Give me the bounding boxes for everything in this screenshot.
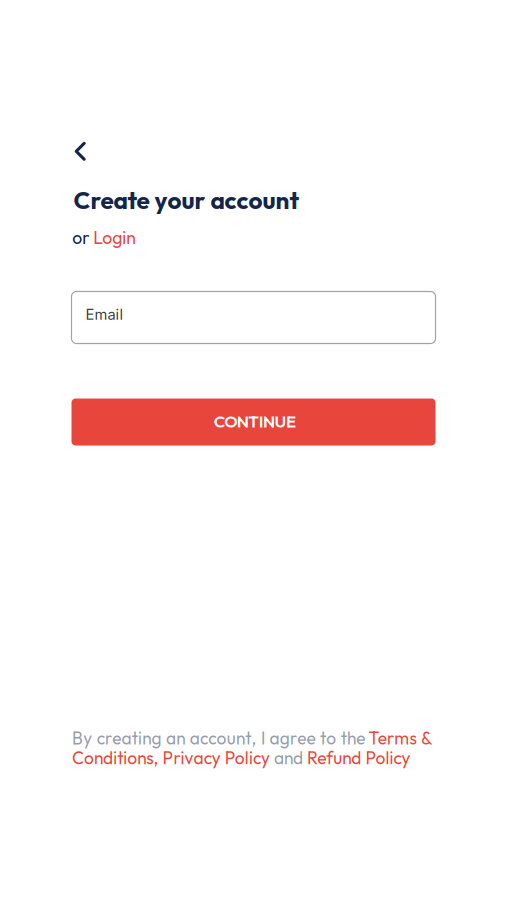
staticText: Login [93, 226, 136, 248]
button[interactable]: Back [58, 129, 102, 173]
button[interactable]: Refund Policy [303, 747, 411, 769]
staticText: By creating an account, I agree to the [72, 727, 365, 749]
button[interactable]: Conditions, [72, 747, 158, 769]
staticText: Conditions, [72, 747, 158, 769]
button[interactable]: Terms & [365, 727, 432, 749]
button[interactable]: Login [93, 226, 136, 248]
staticText: Privacy Policy [158, 747, 270, 769]
staticText: or [72, 226, 93, 248]
staticText: and [270, 747, 303, 769]
staticText: Terms & [365, 727, 432, 749]
staticText: Email [85, 306, 123, 323]
staticText: Refund Policy [303, 747, 411, 769]
button[interactable]: Privacy Policy [158, 747, 270, 769]
button[interactable]: Email [71, 291, 435, 343]
staticText: CONTINUE [214, 411, 296, 432]
button[interactable]: CONTINUE [71, 398, 435, 445]
staticText: Create your account [73, 185, 299, 215]
